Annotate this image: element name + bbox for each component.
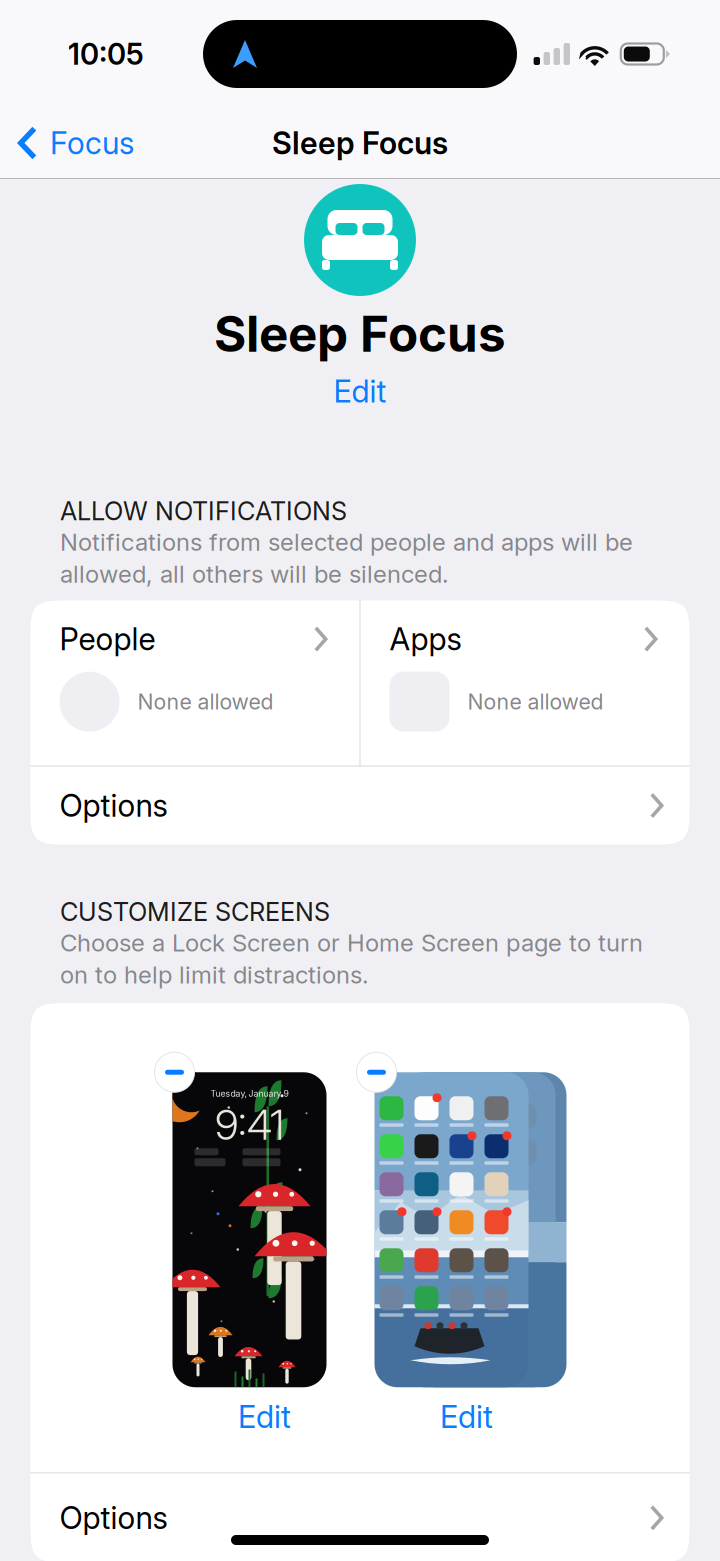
staticText: Notifications from selected people and a… xyxy=(60,527,633,556)
staticText: Options xyxy=(59,787,167,824)
button[interactable]: Remove screen xyxy=(154,1052,194,1092)
staticText: Edit xyxy=(440,1398,493,1435)
staticText: 9:41 xyxy=(215,1100,284,1150)
staticText: Options xyxy=(59,1499,167,1536)
staticText: Choose a Lock Screen or Home Screen page… xyxy=(60,928,643,957)
staticText: Tuesday, January 9 xyxy=(210,1088,288,1099)
button[interactable]: Apps xyxy=(360,600,689,765)
staticText: People xyxy=(59,620,155,658)
staticText: Sleep Focus xyxy=(214,304,506,364)
staticText: Sleep Focus xyxy=(272,124,448,161)
button[interactable]: Edit xyxy=(424,1394,509,1439)
staticText: ALLOW NOTIFICATIONS xyxy=(60,496,347,526)
button[interactable]: Remove screen xyxy=(356,1052,396,1092)
button[interactable]: People xyxy=(30,600,359,765)
staticText: Focus xyxy=(50,124,134,161)
button[interactable]: Edit xyxy=(222,1394,307,1439)
staticText: Edit xyxy=(333,373,386,410)
staticText: CUSTOMIZE SCREENS xyxy=(60,896,330,927)
button[interactable]: Options xyxy=(30,766,689,844)
staticText: None allowed xyxy=(467,689,603,714)
staticText: Edit xyxy=(238,1398,291,1435)
staticText: 10:05 xyxy=(68,36,144,72)
staticText: None allowed xyxy=(137,689,273,714)
staticText: allowed, all others will be silenced. xyxy=(60,559,449,588)
button[interactable]: Edit xyxy=(317,369,402,414)
staticText: on to help limit distractions. xyxy=(60,960,369,989)
button[interactable]: Focus xyxy=(0,108,150,178)
button[interactable]: Options xyxy=(30,1473,689,1561)
staticText: Apps xyxy=(389,620,461,658)
